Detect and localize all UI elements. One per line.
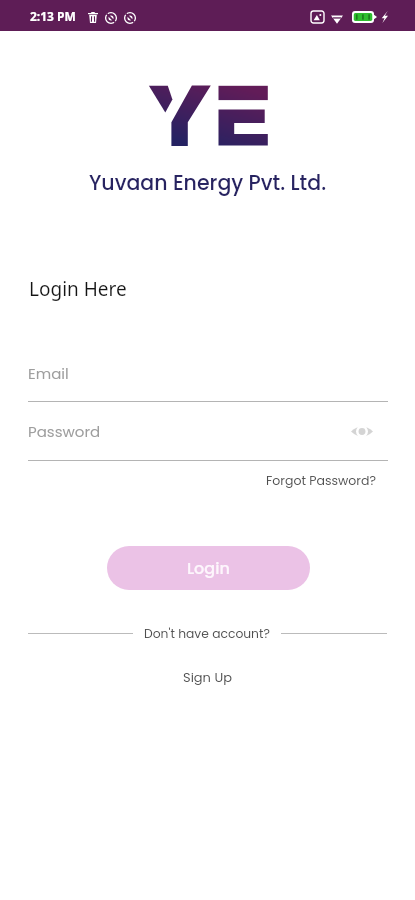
staticText: Yuvaan Energy Pvt. Ltd. [0,168,415,197]
staticText: Login Here [29,276,127,302]
button[interactable]: Show password [348,417,376,445]
staticText: 2:13 PM [30,8,76,24]
staticText: Email [28,363,69,384]
staticText: Password [28,421,101,442]
staticText: Login [187,557,230,579]
button[interactable]: Sign Up [183,668,232,686]
button[interactable]: Forgot Password? [266,472,376,489]
staticText: Don't have account? [144,625,270,642]
button[interactable]: Login [107,546,310,590]
